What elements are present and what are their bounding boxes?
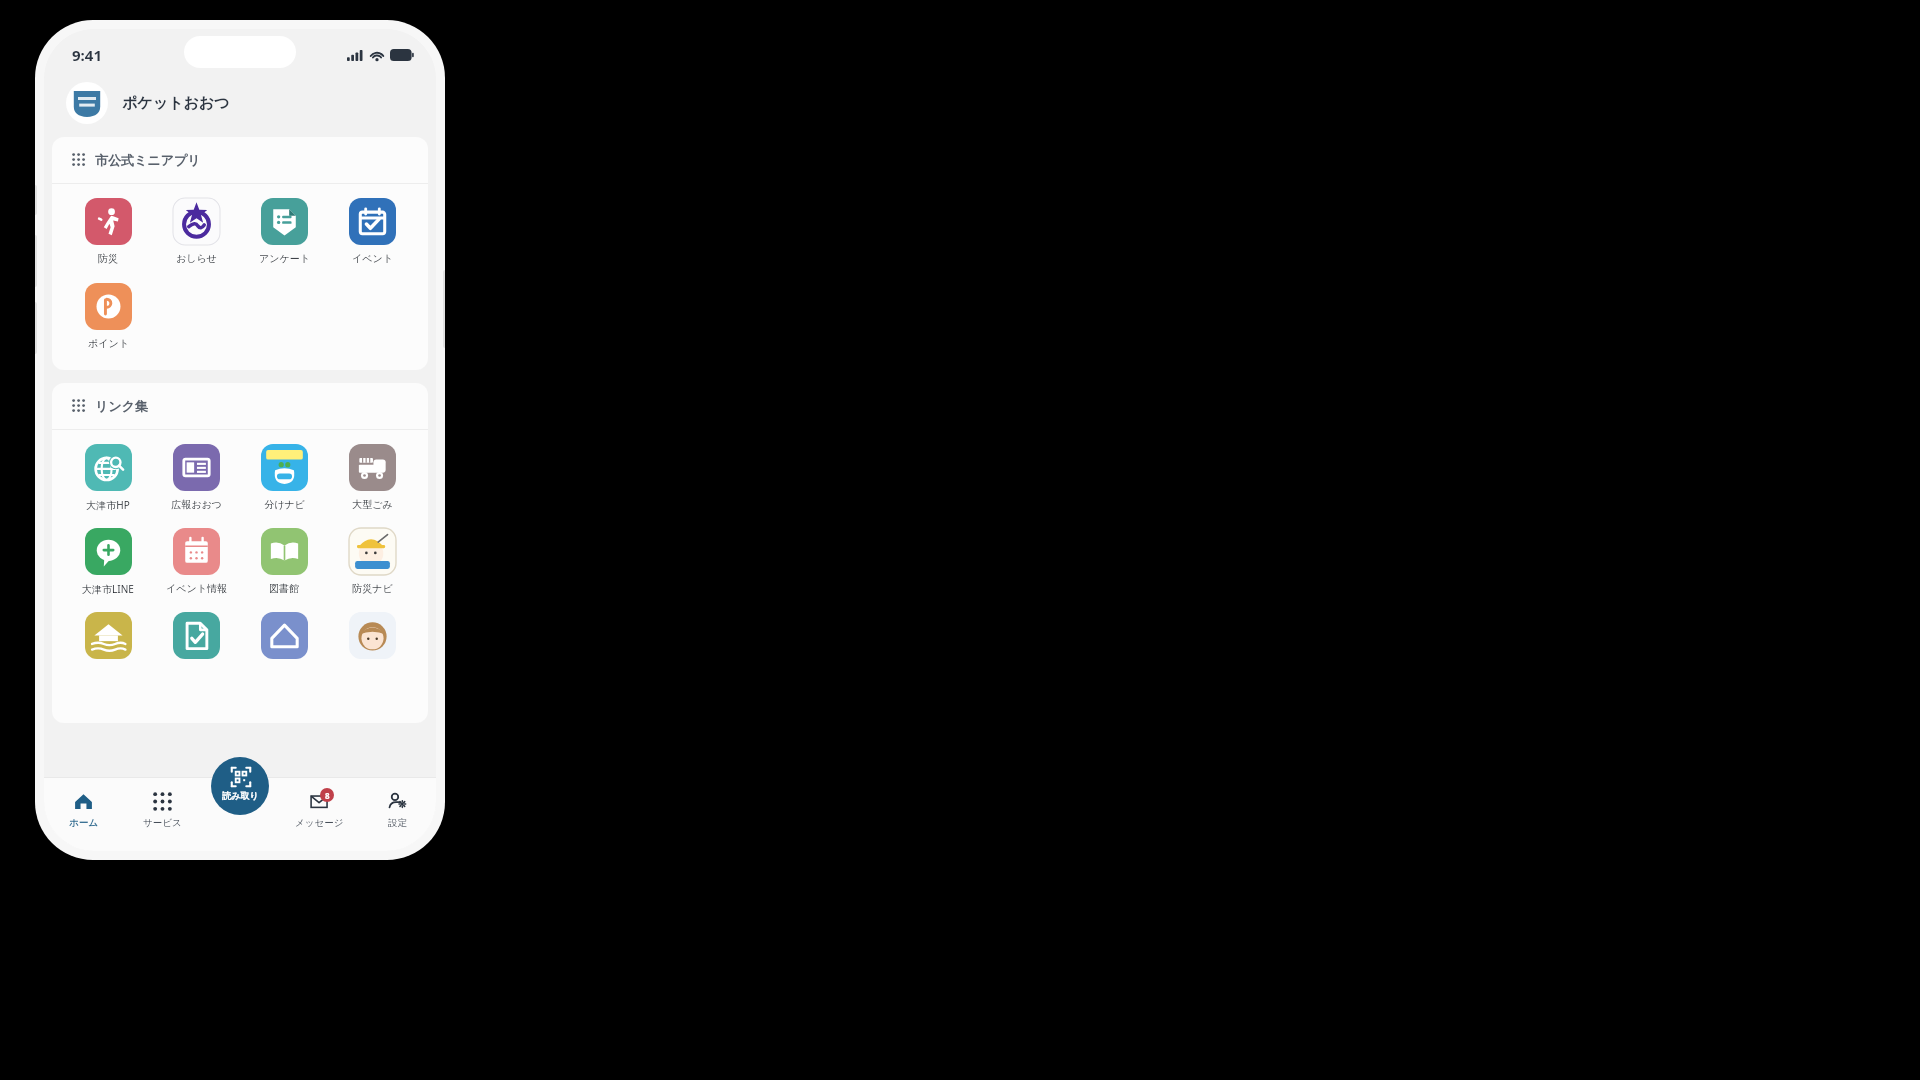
- button[interactable]: 防災ナビ: [328, 524, 416, 599]
- staticText: イベント情報: [166, 582, 227, 595]
- staticText: サービス: [143, 817, 182, 829]
- staticText: おしらせ: [176, 252, 217, 265]
- staticText: 大津市HP: [86, 498, 130, 512]
- staticText: 防災: [98, 252, 118, 265]
- button[interactable]: [64, 608, 152, 663]
- staticText: アンケート: [259, 252, 310, 265]
- staticText: 広報おおつ: [171, 498, 222, 511]
- staticText: 図書館: [269, 582, 299, 595]
- button[interactable]: 8: [280, 783, 358, 851]
- button[interactable]: 設定: [358, 783, 436, 851]
- staticText: メッセージ: [295, 817, 344, 829]
- staticText: 大津市LINE: [82, 582, 134, 596]
- button[interactable]: [240, 608, 328, 663]
- button[interactable]: 大津市LINE: [64, 524, 152, 600]
- button[interactable]: [152, 608, 240, 663]
- staticText: 読み取り: [222, 790, 259, 801]
- button[interactable]: [328, 608, 416, 663]
- button[interactable]: 大津市HP: [64, 440, 152, 516]
- staticText: 市公式ミニアプリ: [95, 152, 201, 168]
- staticText: 9:41: [72, 45, 102, 65]
- button[interactable]: おしらせ: [152, 194, 240, 269]
- button[interactable]: イベント情報: [152, 524, 240, 599]
- staticText: リンク集: [95, 398, 148, 414]
- button[interactable]: 図書館: [240, 524, 328, 599]
- staticText: 分けナビ: [264, 498, 305, 511]
- button[interactable]: イベント: [328, 194, 416, 269]
- button[interactable]: 分けナビ: [240, 440, 328, 515]
- button[interactable]: ホーム: [44, 783, 123, 851]
- button[interactable]: 大型ごみ: [328, 440, 416, 515]
- button[interactable]: ポイント: [64, 279, 152, 354]
- button[interactable]: サービス: [123, 783, 202, 851]
- button[interactable]: 読み取り: [211, 757, 269, 815]
- staticText: ポケットおおつ: [122, 94, 230, 113]
- staticText: ポイント: [88, 337, 129, 350]
- staticText: ホーム: [69, 817, 98, 829]
- staticText: 設定: [388, 817, 407, 829]
- button[interactable]: 広報おおつ: [152, 440, 240, 515]
- staticText: 防災ナビ: [352, 582, 393, 595]
- staticText: イベント: [352, 252, 393, 265]
- staticText: 8: [325, 790, 330, 801]
- staticText: 大型ごみ: [352, 498, 393, 511]
- button[interactable]: アンケート: [240, 194, 328, 269]
- button[interactable]: 防災: [64, 194, 152, 269]
